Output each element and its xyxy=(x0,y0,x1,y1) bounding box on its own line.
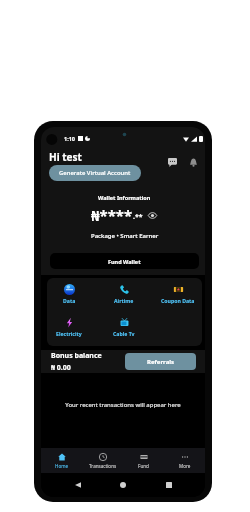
button[interactable]: Home xyxy=(114,476,132,494)
staticText: Transactions xyxy=(89,463,117,469)
button[interactable]: Electricity xyxy=(47,317,92,337)
button[interactable]: Home xyxy=(41,448,82,473)
staticText: Package • Smart Earner xyxy=(91,232,159,240)
staticText: 1:10 xyxy=(64,135,75,142)
staticText: Electricity xyxy=(56,330,82,337)
staticText: Data xyxy=(63,297,76,304)
staticText: Airtime xyxy=(114,297,134,304)
staticText: .** xyxy=(133,212,143,222)
staticText: Home xyxy=(55,463,69,469)
button[interactable]: Coupon Data xyxy=(155,284,201,304)
staticText: Wallet Information xyxy=(98,194,151,201)
button[interactable]: Back xyxy=(69,476,87,494)
staticText: Bonus balance xyxy=(51,351,102,361)
button[interactable]: Fund xyxy=(123,448,164,473)
staticText: Fund xyxy=(138,463,149,469)
button[interactable]: Recents xyxy=(160,476,178,494)
staticText: Cable Tv xyxy=(113,330,135,337)
button[interactable]: Cable Tv xyxy=(101,317,147,337)
button[interactable]: Show balance xyxy=(147,210,158,221)
staticText: Your recent transactions will appear her… xyxy=(41,401,205,409)
button[interactable]: Messages xyxy=(164,154,180,170)
button[interactable]: More xyxy=(164,448,205,473)
staticText: Fund Wallet xyxy=(108,258,141,265)
staticText: ₦ 0.00 xyxy=(51,363,71,373)
staticText: ₦**** xyxy=(91,205,133,225)
button[interactable]: Fund Wallet xyxy=(50,253,199,269)
button[interactable]: Notifications xyxy=(185,154,201,170)
button[interactable]: Transactions xyxy=(82,448,123,473)
staticText: Generate Virtual Account xyxy=(59,169,131,177)
button[interactable]: Data xyxy=(47,284,92,304)
staticText: More xyxy=(179,463,191,469)
staticText: Referrals xyxy=(147,358,175,366)
button[interactable]: Referrals xyxy=(125,353,196,370)
button[interactable]: Airtime xyxy=(101,284,147,304)
staticText: Coupon Data xyxy=(161,297,195,304)
staticText: Hi test xyxy=(49,150,82,164)
button[interactable]: Generate Virtual Account xyxy=(49,165,141,181)
